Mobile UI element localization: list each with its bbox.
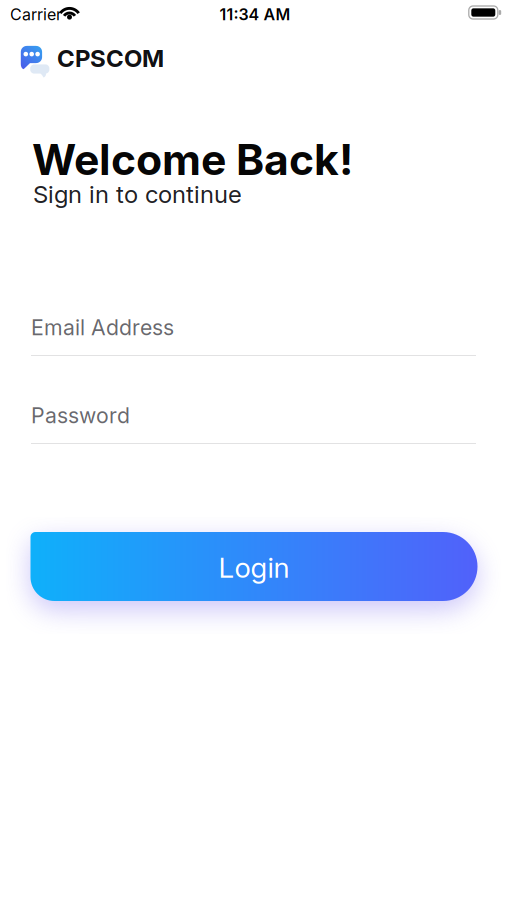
button[interactable]: Login [30,532,477,601]
button[interactable]: Password [31,403,476,444]
staticText: Sign in to continue [33,180,242,208]
staticText: Carrier [10,5,62,24]
button[interactable]: Email Address [31,315,476,356]
staticText: 11:34 AM [219,5,290,24]
staticText: Password [31,403,130,428]
staticText: Login [218,551,289,584]
staticText: Email Address [31,315,174,340]
staticText: CPSCOM [57,44,164,72]
staticText: Welcome Back! [32,134,353,185]
